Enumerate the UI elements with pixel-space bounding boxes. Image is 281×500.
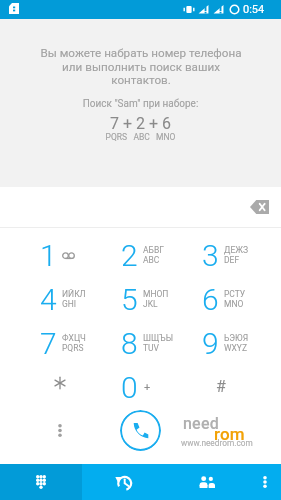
staticText: 8 bbox=[121, 326, 138, 361]
staticText: МНОП bbox=[143, 289, 169, 299]
staticText: 0:54 bbox=[243, 3, 265, 16]
button[interactable]: 7 bbox=[19, 321, 100, 365]
button[interactable]: 3 bbox=[181, 233, 262, 277]
staticText: # bbox=[216, 377, 226, 396]
button[interactable]: # bbox=[181, 365, 262, 409]
staticText: ИЙКЛ bbox=[62, 289, 86, 299]
staticText: АБВГ bbox=[143, 245, 164, 255]
button[interactable]: 0 bbox=[100, 365, 181, 409]
button[interactable]: 9 bbox=[181, 321, 262, 365]
staticText: Поиск "Sam" при наборе: bbox=[0, 98, 281, 110]
staticText: 0 bbox=[121, 370, 138, 405]
button[interactable]: 4 bbox=[19, 277, 100, 321]
staticText: ЬЭЮЯ bbox=[224, 333, 249, 343]
staticText: need bbox=[183, 414, 219, 433]
button[interactable]: Call bbox=[120, 410, 161, 451]
staticText: TUV bbox=[143, 343, 159, 353]
button[interactable]: Contacts bbox=[165, 464, 248, 500]
staticText: GHI bbox=[62, 299, 77, 309]
staticText: 2 bbox=[121, 238, 138, 273]
button[interactable]: 1 bbox=[19, 233, 100, 277]
staticText: 4 bbox=[40, 282, 57, 317]
staticText: + bbox=[144, 381, 151, 394]
staticText: ШЩЪЫ bbox=[143, 333, 174, 343]
staticText: 7 bbox=[40, 326, 57, 361]
staticText: 3 bbox=[202, 238, 219, 273]
button[interactable]: 6 bbox=[181, 277, 262, 321]
staticText: PQRS ABC MNO bbox=[0, 132, 281, 142]
staticText: WXYZ bbox=[224, 343, 248, 353]
staticText: DEF bbox=[224, 255, 240, 265]
staticText: 5 bbox=[121, 282, 138, 317]
staticText: 6 bbox=[202, 282, 219, 317]
button[interactable]: 5 bbox=[100, 277, 181, 321]
staticText: РСТУ bbox=[224, 289, 246, 299]
button[interactable]: Backspace bbox=[246, 194, 272, 220]
staticText: www.needrom.com bbox=[181, 438, 253, 448]
button[interactable]: Call history bbox=[82, 464, 165, 500]
button[interactable]: 2 bbox=[100, 233, 181, 277]
button[interactable]: More options bbox=[48, 418, 72, 442]
button[interactable]: 8 bbox=[100, 321, 181, 365]
staticText: 9 bbox=[202, 326, 219, 361]
button[interactable]: Keypad bbox=[0, 464, 82, 500]
button[interactable]: More options bbox=[248, 464, 281, 500]
button[interactable] bbox=[19, 365, 100, 409]
staticText: rom bbox=[214, 424, 245, 444]
staticText: ФХЦЧ bbox=[62, 333, 86, 343]
staticText: ABC bbox=[143, 255, 160, 265]
staticText: ДЕЖЗ bbox=[224, 245, 248, 255]
staticText: 7 + 2 + 6 bbox=[0, 114, 281, 133]
staticText: JKL bbox=[143, 299, 158, 309]
staticText: PQRS bbox=[62, 343, 84, 353]
staticText: MNO bbox=[224, 299, 244, 309]
staticText: 1 bbox=[40, 238, 57, 273]
staticText: Вы можете набрать номер телефона или вып… bbox=[40, 46, 242, 86]
